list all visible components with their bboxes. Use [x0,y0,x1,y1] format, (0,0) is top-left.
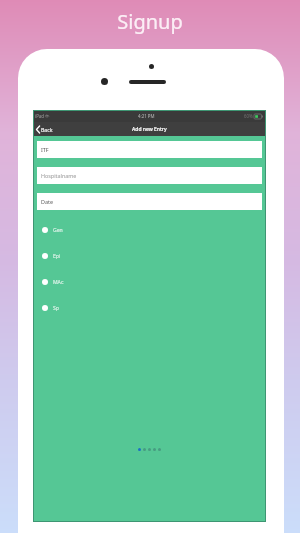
staticText: Add new Entry [132,126,167,133]
button[interactable]: Hospitalname [37,167,262,184]
staticText: Back [41,126,53,133]
staticText: 4:21 PM [138,113,155,119]
staticText: Epi [53,253,61,260]
staticText: Date [41,198,53,205]
button[interactable]: Epi [33,243,266,269]
staticText: Gen [53,227,63,234]
button[interactable]: MAc [33,269,266,295]
staticText: Sp [53,305,59,312]
staticText: ITF [41,146,49,153]
button[interactable]: Gen [33,217,266,243]
staticText: MAc [53,279,64,286]
staticText: 60% [244,113,253,119]
button[interactable]: ITF [37,141,262,158]
button[interactable]: Sp [33,295,266,321]
button[interactable]: Date [37,193,262,210]
button[interactable]: Back [33,124,56,135]
staticText: Signup [0,8,300,35]
staticText: Hospitalname [41,172,77,179]
staticText: iPad [35,113,44,119]
